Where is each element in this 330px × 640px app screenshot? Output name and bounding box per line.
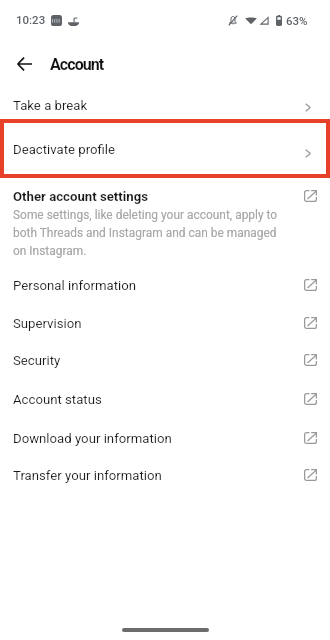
button[interactable]: Account status: [0, 380, 330, 418]
staticText: Take a break: [13, 98, 88, 113]
staticText: 10:23: [16, 13, 46, 26]
staticText: Account: [50, 55, 104, 74]
button[interactable]: Personal information: [0, 266, 330, 304]
staticText: 63%: [286, 14, 308, 27]
button[interactable]: Deactivate profile: [0, 120, 330, 178]
staticText: Some settings, like deleting your accoun…: [13, 208, 285, 258]
staticText: Account status: [13, 392, 102, 407]
staticText: Download your information: [13, 431, 172, 446]
staticText: Personal information: [13, 278, 137, 293]
staticText: Security: [13, 353, 61, 368]
staticText: Transfer your information: [13, 468, 162, 483]
button[interactable]: Back: [6, 46, 42, 82]
button[interactable]: Download your information: [0, 419, 330, 457]
button[interactable]: Security: [0, 341, 330, 379]
button[interactable]: Transfer your information: [0, 456, 330, 494]
staticText: Deactivate profile: [13, 142, 116, 157]
button[interactable]: Other account settings: [0, 185, 330, 261]
staticText: Supervision: [13, 316, 82, 331]
button[interactable]: Supervision: [0, 304, 330, 342]
staticText: Other account settings: [13, 189, 148, 204]
button[interactable]: Take a break: [0, 83, 330, 127]
